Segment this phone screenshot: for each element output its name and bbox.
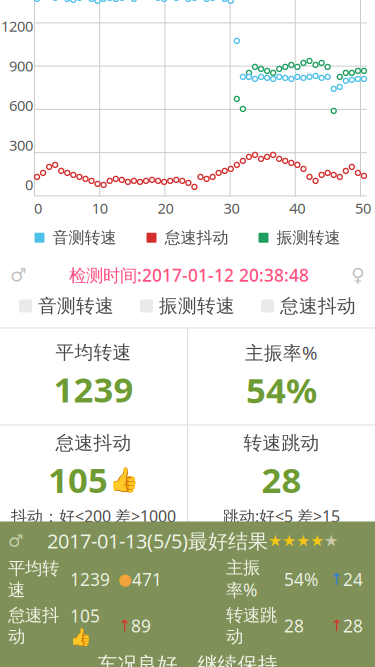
staticText: 28 xyxy=(343,614,363,637)
button[interactable]: 振测转速 xyxy=(127,290,248,321)
staticText: ● xyxy=(118,570,132,588)
staticText: 105👍 xyxy=(70,604,100,647)
staticText: ↑ xyxy=(330,570,343,588)
staticText: ♀ xyxy=(351,264,365,286)
staticText: 检测时间:2017-01-12 20:38:48 xyxy=(69,263,309,286)
staticText: ★ xyxy=(310,532,324,550)
staticText: ★ xyxy=(282,532,296,550)
button[interactable]: 音测转速 xyxy=(6,290,127,321)
staticText: 怠速抖动 xyxy=(280,294,356,317)
staticText: ↑ xyxy=(118,617,131,635)
staticText: ★ xyxy=(324,532,338,550)
staticText: 0 xyxy=(34,198,42,218)
staticText: 10 xyxy=(92,198,108,218)
staticText: 89 xyxy=(131,614,151,637)
staticText: 1239 xyxy=(53,366,133,412)
button[interactable]: 怠速抖动 xyxy=(0,425,187,533)
staticText: 跳动:好<5 差>15 xyxy=(223,505,340,527)
staticText: 👍 xyxy=(109,466,139,493)
staticText: 28 xyxy=(261,456,301,502)
button[interactable]: 主振率% xyxy=(188,334,375,419)
staticText: 105 xyxy=(48,456,108,502)
staticText: ★ xyxy=(268,532,282,550)
staticText: 振测转速 xyxy=(159,294,235,317)
staticText: 20 xyxy=(158,198,174,218)
staticText: 1239 xyxy=(70,568,110,591)
staticText: 音测转速 xyxy=(38,294,114,317)
button[interactable]: 转速跳动 xyxy=(188,425,375,533)
staticText: 50 xyxy=(355,198,371,218)
staticText: 怠速抖动 xyxy=(164,228,228,248)
staticText: 24 xyxy=(343,568,363,591)
staticText: 0 xyxy=(25,175,33,194)
staticText: 30 xyxy=(223,198,239,218)
staticText: ↑ xyxy=(330,617,343,635)
staticText: 54% xyxy=(246,367,317,413)
staticText: 车况良好，继续保持 xyxy=(97,652,277,667)
staticText: 平均转速 xyxy=(8,558,59,600)
staticText: 600 xyxy=(9,96,33,115)
staticText: ★ xyxy=(296,532,310,550)
staticText: ♂ xyxy=(8,531,24,551)
staticText: 900 xyxy=(9,56,33,75)
button[interactable]: 平均转速 xyxy=(0,335,187,418)
staticText: 300 xyxy=(9,135,33,155)
staticText: 怠速抖动 xyxy=(8,604,59,647)
staticText: 1200 xyxy=(1,16,33,36)
staticText: 转速跳动 xyxy=(226,604,277,647)
staticText: 转速跳动 xyxy=(243,431,319,454)
staticText: 28 xyxy=(284,614,304,637)
staticText: 2017-01-13(5/5)最好结果 xyxy=(47,527,268,554)
staticText: 主振率% xyxy=(245,340,318,365)
staticText: 471 xyxy=(132,568,162,591)
staticText: 平均转速 xyxy=(55,341,131,364)
staticText: 54% xyxy=(284,568,318,591)
staticText: 抖动：好<200 差>1000 xyxy=(11,505,176,527)
staticText: 振测转速 xyxy=(276,228,340,248)
staticText: 怠速抖动 xyxy=(55,431,131,454)
staticText: 音测转速 xyxy=(52,228,116,248)
staticText: ♂ xyxy=(10,264,27,286)
button[interactable]: 怠速抖动 xyxy=(248,290,369,321)
staticText: 主振率% xyxy=(226,557,260,601)
staticText: 40 xyxy=(289,198,305,218)
